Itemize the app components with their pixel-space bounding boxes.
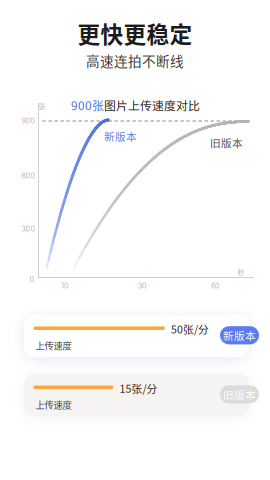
staticText: 张 xyxy=(38,101,45,111)
staticText: 50张/分 xyxy=(171,321,209,337)
staticText: 新版本 xyxy=(223,328,256,343)
button[interactable]: 旧版本 xyxy=(220,385,259,403)
staticText: 60 xyxy=(211,281,220,290)
staticText: 新版本 xyxy=(104,128,137,144)
staticText: 上传速度 xyxy=(35,338,71,352)
staticText: 900 xyxy=(21,117,35,125)
staticText: 图片上传速度对比 xyxy=(104,96,200,114)
staticText: 上传速度 xyxy=(35,398,71,411)
button[interactable]: 新版本 xyxy=(220,326,259,344)
staticText: 600 xyxy=(21,172,35,180)
staticText: 300 xyxy=(21,225,35,233)
staticText: 0 xyxy=(29,275,34,284)
staticText: 秒 xyxy=(237,267,244,277)
staticText: 旧版本 xyxy=(210,135,243,150)
staticText: 10 xyxy=(61,281,69,290)
staticText: 30 xyxy=(138,281,147,290)
staticText: 15张/分 xyxy=(119,380,157,396)
staticText: 旧版本 xyxy=(223,387,256,402)
staticText: 900张 xyxy=(71,96,104,114)
staticText: 更快更稳定 xyxy=(77,17,192,49)
staticText: 高速连拍不断线 xyxy=(86,51,184,70)
